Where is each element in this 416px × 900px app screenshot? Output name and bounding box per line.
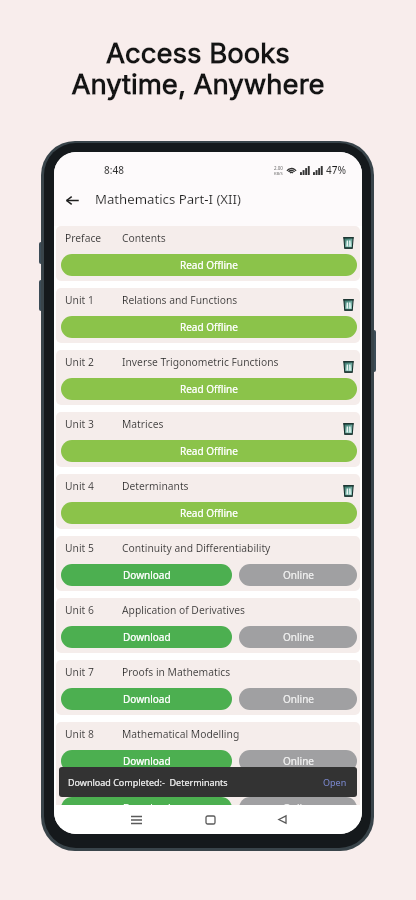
button[interactable]: Download [61, 688, 232, 710]
button[interactable]: Unit 4 [56, 474, 360, 529]
staticText: Download Completed:- Determinants [68, 776, 228, 788]
staticText: Continuity and Differentiability [122, 541, 271, 555]
staticText: Download [123, 630, 171, 644]
button[interactable]: Home [196, 805, 224, 834]
button[interactable]: Download [61, 797, 232, 805]
button[interactable]: Unit 2 [56, 350, 360, 405]
staticText: Online [283, 754, 314, 768]
button[interactable]: Delete [339, 481, 357, 499]
button[interactable]: Delete [339, 357, 357, 375]
staticText: Preface [65, 231, 122, 245]
staticText: Inverse Trigonometric Functions [122, 355, 279, 369]
staticText: Read Offline [180, 320, 238, 334]
staticText: Unit 8 [65, 727, 122, 741]
staticText: Open [323, 776, 347, 788]
staticText: Unit 2 [65, 355, 122, 369]
staticText: Unit 1 [65, 293, 122, 307]
staticText: Mathematical Modelling [122, 727, 240, 741]
button[interactable]: Online [239, 688, 357, 710]
button[interactable]: Preface [56, 226, 360, 281]
staticText: Download [123, 801, 171, 805]
staticText: Read Offline [180, 506, 238, 520]
staticText: Read Offline [180, 444, 238, 458]
staticText: Anytime, Anywhere [71, 67, 325, 100]
staticText: Determinants [122, 479, 189, 493]
button[interactable]: Download [61, 564, 232, 586]
staticText: Matrices [122, 417, 164, 431]
button[interactable]: Unit 7 [56, 660, 360, 715]
staticText: Online [283, 801, 314, 805]
button[interactable]: Download [61, 750, 232, 772]
button[interactable]: Back [59, 187, 85, 213]
button[interactable]: Read Offline [61, 254, 357, 276]
button[interactable]: Read Offline [61, 316, 357, 338]
staticText: Unit 7 [65, 665, 122, 679]
staticText: Download [123, 754, 171, 768]
staticText: KB/S [274, 171, 283, 176]
button[interactable]: Online [239, 750, 357, 772]
button[interactable]: Recents [122, 805, 150, 834]
staticText: 47% [326, 163, 346, 177]
button[interactable]: Unit 1 [56, 288, 360, 343]
staticText: Access Books [106, 36, 290, 69]
button[interactable]: Delete [339, 233, 357, 251]
button[interactable]: Download [61, 626, 232, 648]
staticText: 2.00 [274, 165, 283, 171]
button[interactable]: Delete [339, 419, 357, 437]
staticText: Mathematics Part-I (XII) [95, 190, 241, 208]
staticText: Unit 5 [65, 541, 122, 555]
button[interactable]: Unit 9 [56, 769, 360, 805]
staticText: Unit 6 [65, 603, 122, 617]
button[interactable]: Download Completed:- Determinants [59, 767, 357, 797]
staticText: Download [123, 692, 171, 706]
staticText: Unit 4 [65, 479, 122, 493]
button[interactable]: Back [268, 805, 296, 834]
button[interactable]: Read Offline [61, 440, 357, 462]
staticText: 8:48 [104, 163, 124, 177]
button[interactable]: Online [239, 797, 357, 805]
button[interactable]: Unit 3 [56, 412, 360, 467]
button[interactable]: Read Offline [61, 502, 357, 524]
button[interactable]: Unit 6 [56, 598, 360, 653]
button[interactable]: Unit 8 [56, 722, 360, 777]
staticText: Online [283, 568, 314, 582]
button[interactable]: Unit 5 [56, 536, 360, 591]
staticText: Online [283, 692, 314, 706]
button[interactable]: Delete [339, 295, 357, 313]
staticText: Proofs in Mathematics [122, 665, 231, 679]
staticText: Download [123, 568, 171, 582]
button[interactable]: Read Offline [61, 378, 357, 400]
button[interactable]: Online [239, 626, 357, 648]
staticText: Contents [122, 231, 166, 245]
staticText: Unit 3 [65, 417, 122, 431]
button[interactable]: Online [239, 564, 357, 586]
staticText: Unit 9 [65, 774, 122, 788]
staticText: Relations and Functions [122, 293, 238, 307]
staticText: Integrals [122, 774, 166, 788]
staticText: Read Offline [180, 382, 238, 396]
staticText: Online [283, 630, 314, 644]
staticText: Read Offline [180, 258, 238, 272]
staticText: Application of Derivatives [122, 603, 245, 617]
